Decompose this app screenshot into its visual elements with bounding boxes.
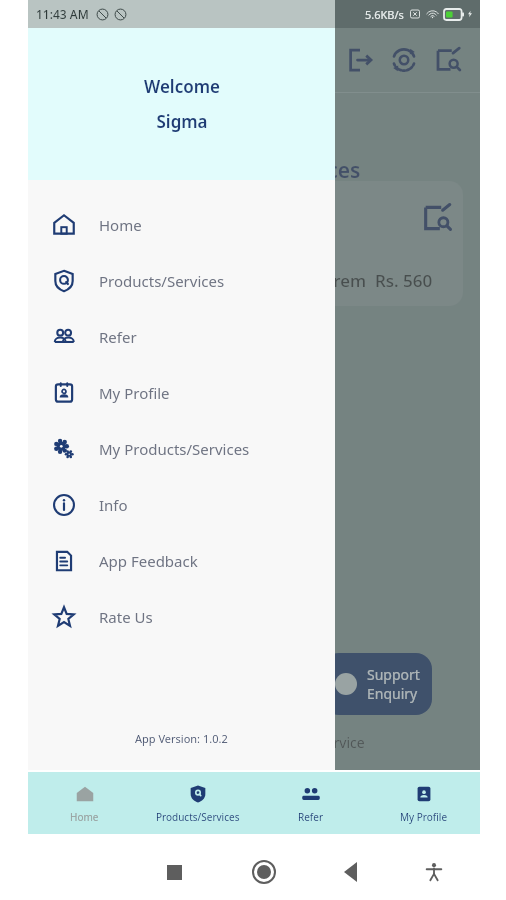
staticText: Service — [318, 733, 365, 752]
staticText: Home — [99, 215, 142, 235]
button[interactable]: Recents — [150, 848, 198, 896]
staticText: My Products/Services — [99, 439, 250, 459]
staticText: Support — [367, 665, 420, 684]
button[interactable]: Home — [240, 848, 288, 896]
staticText: Products/Services — [99, 271, 225, 291]
staticText: My Profile — [99, 383, 170, 403]
staticText: Refer — [298, 810, 324, 824]
button[interactable]: Refresh — [382, 38, 426, 82]
staticText: Info — [99, 495, 128, 515]
button[interactable]: Home — [28, 772, 141, 834]
staticText: Welcome — [144, 75, 220, 98]
button[interactable]: Prem Rs. 560 — [148, 181, 463, 306]
button[interactable]: Refer — [28, 309, 335, 365]
button[interactable]: Rate Us — [28, 589, 335, 645]
button[interactable]: My Profile — [28, 365, 335, 421]
staticText: Rate Us — [99, 607, 153, 627]
staticText: Products/Services — [156, 810, 240, 824]
button[interactable]: Search records — [426, 38, 470, 82]
staticText: Refer — [99, 327, 137, 347]
staticText: App Feedback — [99, 551, 198, 571]
button[interactable]: App Feedback — [28, 533, 335, 589]
staticText: 11:43 AM — [36, 6, 89, 22]
button[interactable]: Products/Services — [28, 253, 335, 309]
staticText: Home — [70, 810, 99, 824]
staticText: Sigma — [156, 110, 208, 133]
staticText: 5.6KB/s — [365, 7, 404, 22]
button[interactable]: Back — [328, 848, 376, 896]
button[interactable]: Accessibility — [410, 848, 458, 896]
button[interactable]: Info — [28, 477, 335, 533]
staticText: My Profile — [400, 810, 448, 824]
button[interactable]: My Profile — [367, 772, 480, 834]
button[interactable]: Logout — [338, 38, 382, 82]
button[interactable] — [28, 28, 480, 770]
staticText: Prem Rs. 560 — [323, 269, 433, 292]
button[interactable]: Home — [28, 197, 335, 253]
staticText: App Version: 1.0.2 — [135, 731, 228, 746]
staticText: Enquiry — [367, 684, 418, 703]
button[interactable]: Products/Services — [141, 772, 254, 834]
button[interactable]: My Products/Services — [28, 421, 335, 477]
staticText: Products/Services — [178, 156, 361, 185]
button[interactable]: Refer — [254, 772, 367, 834]
button[interactable]: Support — [323, 653, 432, 715]
